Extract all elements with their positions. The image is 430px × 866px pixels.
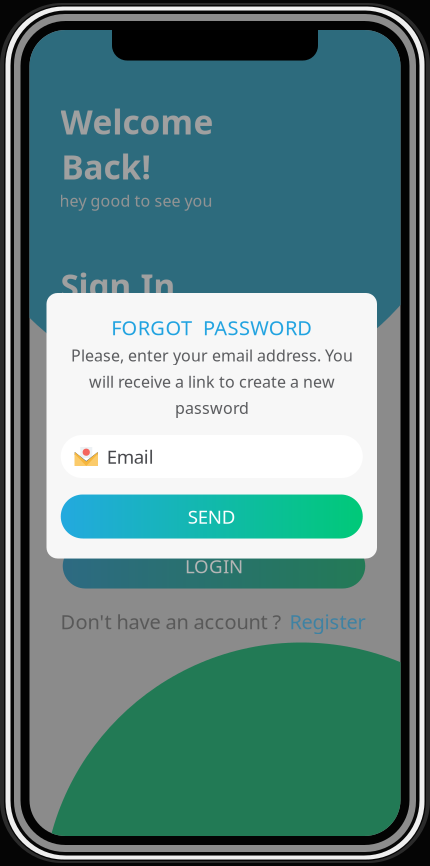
button[interactable]: Register [289,608,365,635]
staticText: Please, enter your email address. You wi… [71,345,353,418]
staticText: Email [107,444,154,469]
staticText: SEND [188,504,236,529]
staticText: Register [289,608,365,635]
button[interactable]: LOGIN [63,543,365,588]
button[interactable]: SEND [61,494,363,538]
staticText: hey good to see you [59,190,212,211]
staticText: Sign In [60,263,175,308]
staticText: Welcome [60,99,213,144]
staticText: LOGIN [185,554,243,578]
staticText: Back! [61,144,150,189]
staticText: FORGOT PASSWORD [111,314,312,341]
staticText: Don't have an account ? [60,608,281,635]
button[interactable]: Email [61,435,363,478]
